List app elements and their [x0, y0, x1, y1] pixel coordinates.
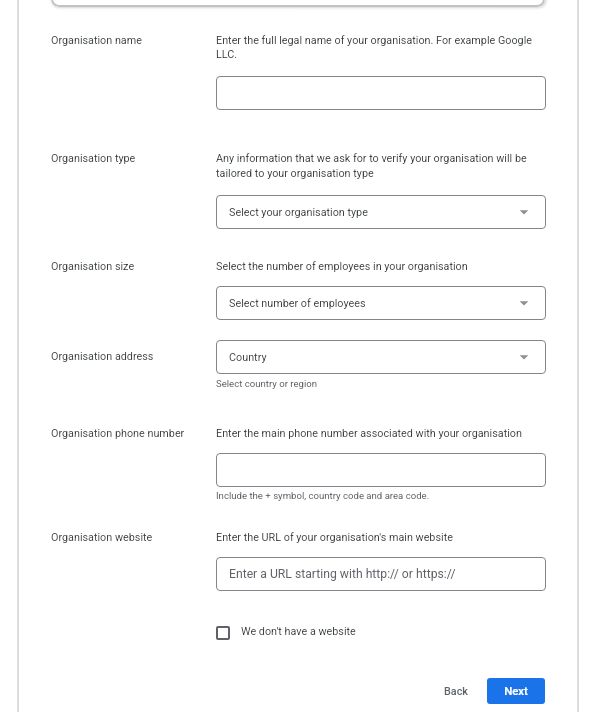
- button[interactable]: Organisation name: [216, 76, 546, 110]
- staticText: tailored to your organisation type: [216, 167, 374, 180]
- button[interactable]: Organisation website: [216, 557, 546, 591]
- staticText: Organisation address: [51, 350, 154, 363]
- button[interactable]: Back: [435, 678, 477, 704]
- staticText: LLC.: [216, 48, 238, 61]
- button[interactable]: Select number of employees: [216, 286, 546, 320]
- staticText: Enter the main phone number associated w…: [216, 427, 522, 440]
- button[interactable]: We don't have a website: [212, 622, 362, 644]
- staticText: Enter a URL starting with http:// or htt…: [229, 567, 456, 581]
- button[interactable]: Next: [487, 678, 545, 704]
- staticText: Select country or region: [216, 378, 318, 389]
- staticText: Organisation type: [51, 152, 136, 165]
- staticText: Back: [444, 685, 468, 698]
- staticText: Organisation website: [51, 531, 153, 544]
- staticText: Enter the URL of your organisation's mai…: [216, 531, 453, 544]
- button[interactable]: Organisation phone number: [216, 453, 546, 487]
- staticText: Organisation name: [51, 34, 142, 47]
- staticText: Organisation phone number: [51, 427, 185, 440]
- staticText: Select the number of employees in your o…: [216, 260, 468, 273]
- staticText: Include the + symbol, country code and a…: [216, 490, 430, 501]
- staticText: Any information that we ask for to verif…: [216, 152, 527, 165]
- staticText: Next: [487, 684, 545, 697]
- staticText: We don't have a website: [241, 625, 356, 638]
- staticText: Enter the full legal name of your organi…: [216, 34, 533, 47]
- staticText: Select number of employees: [229, 297, 366, 310]
- button[interactable]: Country: [216, 340, 546, 374]
- staticText: Organisation size: [51, 260, 135, 273]
- button[interactable]: Select your organisation type: [216, 195, 546, 229]
- staticText: Country: [229, 351, 267, 364]
- staticText: Select your organisation type: [229, 206, 368, 219]
